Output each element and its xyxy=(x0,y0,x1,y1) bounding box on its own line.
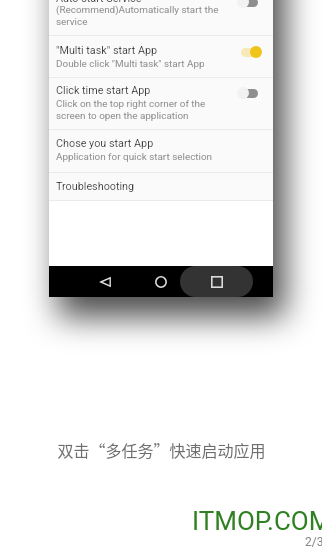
staticText: "Multi task" start App xyxy=(56,44,158,57)
staticText: Click on the top right corner of the scr… xyxy=(56,98,222,121)
staticText: Click time start App xyxy=(56,84,151,97)
button[interactable]: Toggle multi task start app xyxy=(235,43,263,61)
button[interactable]: Home xyxy=(145,266,176,297)
button[interactable]: Toggle click time start app xyxy=(235,84,263,102)
staticText: (Recommend)Automatically start the servi… xyxy=(56,4,222,27)
button[interactable]: Toggle auto start service xyxy=(235,0,263,11)
staticText: Double click "Multi task" start App xyxy=(56,58,222,70)
staticText: Auto start Service xyxy=(56,0,142,5)
button[interactable]: Recent apps xyxy=(201,266,232,297)
button[interactable] xyxy=(49,36,273,77)
button[interactable] xyxy=(49,78,273,129)
staticText: Troubleshooting xyxy=(56,180,135,193)
staticText: 双击“多任务”快速启动应用 xyxy=(57,438,266,461)
button[interactable]: Back xyxy=(90,266,121,297)
staticText: Application for quick start selection xyxy=(56,151,226,163)
staticText: 2/3 xyxy=(305,535,322,549)
staticText: Chose you start App xyxy=(56,137,154,150)
button[interactable] xyxy=(49,130,273,172)
staticText: ITMOP.COM xyxy=(192,506,322,536)
button[interactable] xyxy=(49,0,273,35)
button[interactable] xyxy=(49,173,273,200)
